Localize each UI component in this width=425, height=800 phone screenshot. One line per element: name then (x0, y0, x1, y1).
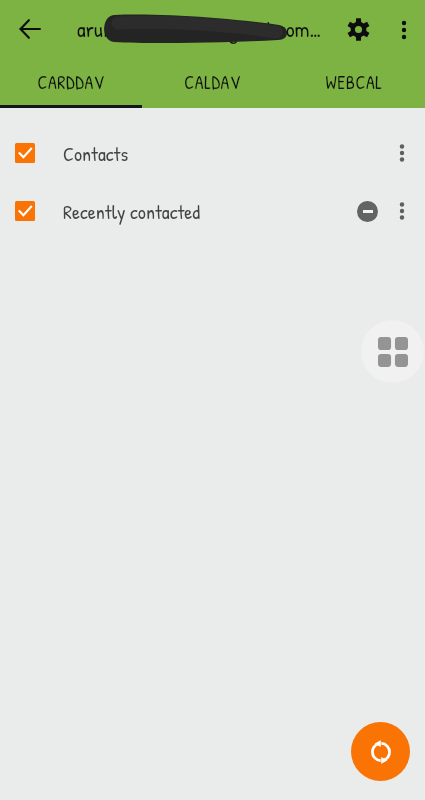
staticText: CALDAV (184, 70, 241, 94)
button[interactable]: Recently contacted (0, 182, 425, 240)
button[interactable]: Settings (334, 5, 382, 53)
button[interactable]: More options (385, 136, 419, 170)
staticText: Recently contacted (63, 198, 357, 225)
staticText: Contacts (63, 140, 357, 167)
button[interactable]: Synchronize (351, 722, 410, 781)
button[interactable]: CALDAV (141, 59, 283, 105)
button[interactable]: More options (385, 194, 419, 228)
staticText: WEBCAL (325, 70, 383, 94)
button[interactable]: More options (382, 8, 425, 51)
button[interactable]: WEBCAL (283, 59, 425, 105)
button[interactable]: CARDDAV (0, 59, 141, 105)
button[interactable]: Switch view (361, 320, 424, 383)
button[interactable]: Back (0, 0, 60, 58)
button[interactable]: Contacts (0, 124, 425, 182)
staticText: arun.krishnamurt@gmail.com… (77, 14, 324, 44)
staticText: CARDDAV (37, 70, 105, 94)
button[interactable]: Remove (357, 201, 378, 222)
